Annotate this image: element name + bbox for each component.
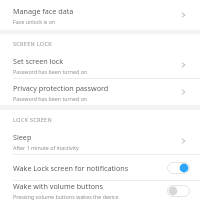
button[interactable]: Open Set screen lock	[178, 59, 190, 71]
staticText: Wake Lock screen for notifications	[13, 163, 129, 173]
button[interactable]: Wake Lock screen for notifications	[0, 155, 200, 180]
staticText: Password has been turned on	[13, 68, 88, 75]
staticText: Wake with volume buttons	[13, 181, 103, 191]
staticText: LOCK SCREEN	[13, 116, 52, 123]
button[interactable]: Wake with volume buttons	[0, 181, 200, 200]
staticText: Privacy protection password	[13, 83, 109, 93]
staticText: Sleep	[13, 132, 32, 142]
staticText: SCREEN LOCK	[13, 40, 52, 47]
button[interactable]: Wake with volume buttons toggle	[167, 185, 190, 197]
staticText: Pressing volume buttons wakes the device	[13, 193, 119, 200]
button[interactable]: Wake Lock screen for notifications toggl…	[167, 162, 190, 174]
button[interactable]: Sleep	[0, 128, 200, 154]
staticText: Password has been turned on	[13, 95, 88, 102]
staticText: Set screen lock	[13, 56, 64, 66]
staticText: After 1 minute of inactivity	[13, 144, 79, 151]
button[interactable]: Privacy protection password	[0, 79, 200, 105]
button[interactable]: Open Privacy protection password	[178, 86, 190, 98]
button[interactable]: Open Manage face data	[178, 9, 190, 21]
button[interactable]: Open Sleep settings	[178, 135, 190, 147]
button[interactable]: Set screen lock	[0, 52, 200, 78]
button[interactable]: Manage face data	[0, 0, 200, 30]
staticText: Face unlock is on	[13, 18, 56, 25]
staticText: Manage face data	[13, 6, 74, 16]
